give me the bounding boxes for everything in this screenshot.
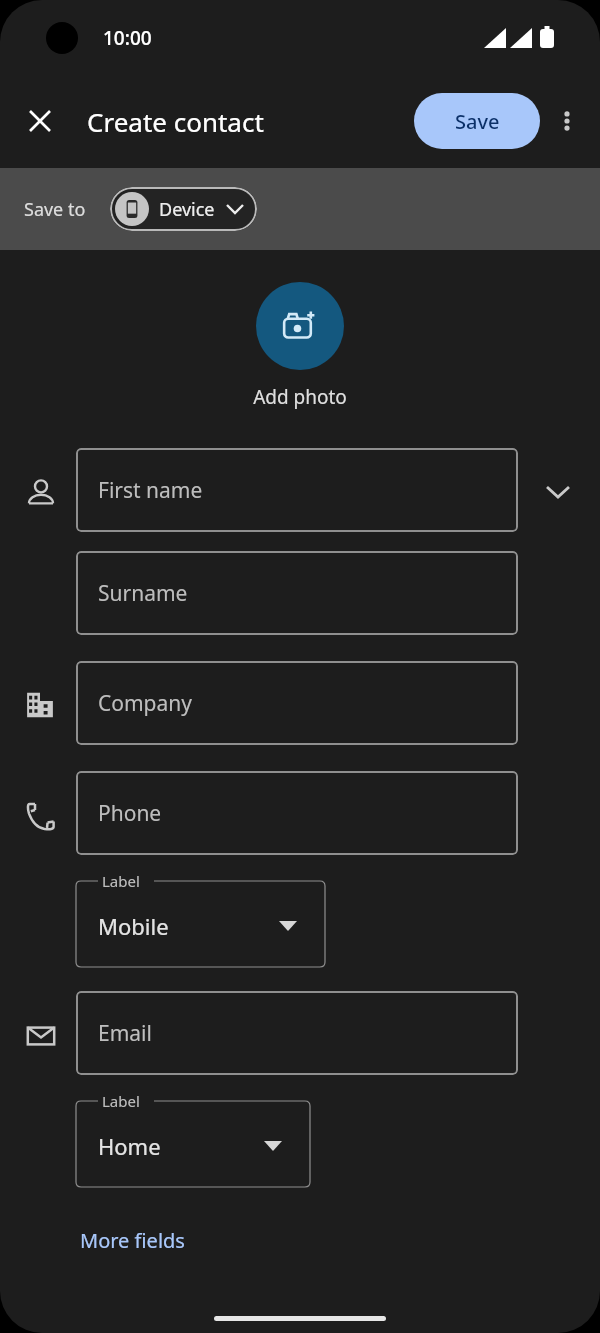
staticText: Company	[98, 689, 192, 718]
staticText: Label	[102, 1091, 140, 1111]
staticText: Device	[159, 197, 215, 222]
button[interactable]	[76, 881, 325, 967]
staticText: Email	[98, 1019, 152, 1048]
staticText: Home	[98, 1131, 161, 1161]
button[interactable]: Phone	[76, 771, 518, 855]
staticText: Create contact	[87, 104, 264, 139]
staticText: Save to	[24, 197, 86, 222]
staticText: Surname	[98, 579, 188, 608]
button[interactable]: Device	[110, 187, 257, 231]
button[interactable]: Company	[76, 661, 518, 745]
button[interactable]: More fields	[64, 1217, 201, 1264]
button[interactable]: Expand name fields	[532, 466, 584, 518]
staticText: First name	[98, 476, 203, 505]
staticText: Label	[102, 871, 140, 891]
button[interactable]: Add photo	[256, 282, 344, 370]
button[interactable]: More options	[544, 98, 590, 144]
button[interactable]	[76, 1101, 310, 1187]
button[interactable]: Save	[414, 93, 540, 149]
staticText: Add photo	[253, 384, 347, 410]
button[interactable]: Email	[76, 991, 518, 1075]
button[interactable]: First name	[76, 448, 518, 532]
staticText: Save	[455, 108, 500, 135]
staticText: 10:00	[103, 25, 152, 51]
button[interactable]: Surname	[76, 551, 518, 635]
button[interactable]: Close	[16, 97, 64, 145]
staticText: More fields	[80, 1227, 185, 1254]
staticText: Phone	[98, 799, 162, 828]
staticText: Mobile	[98, 911, 169, 941]
